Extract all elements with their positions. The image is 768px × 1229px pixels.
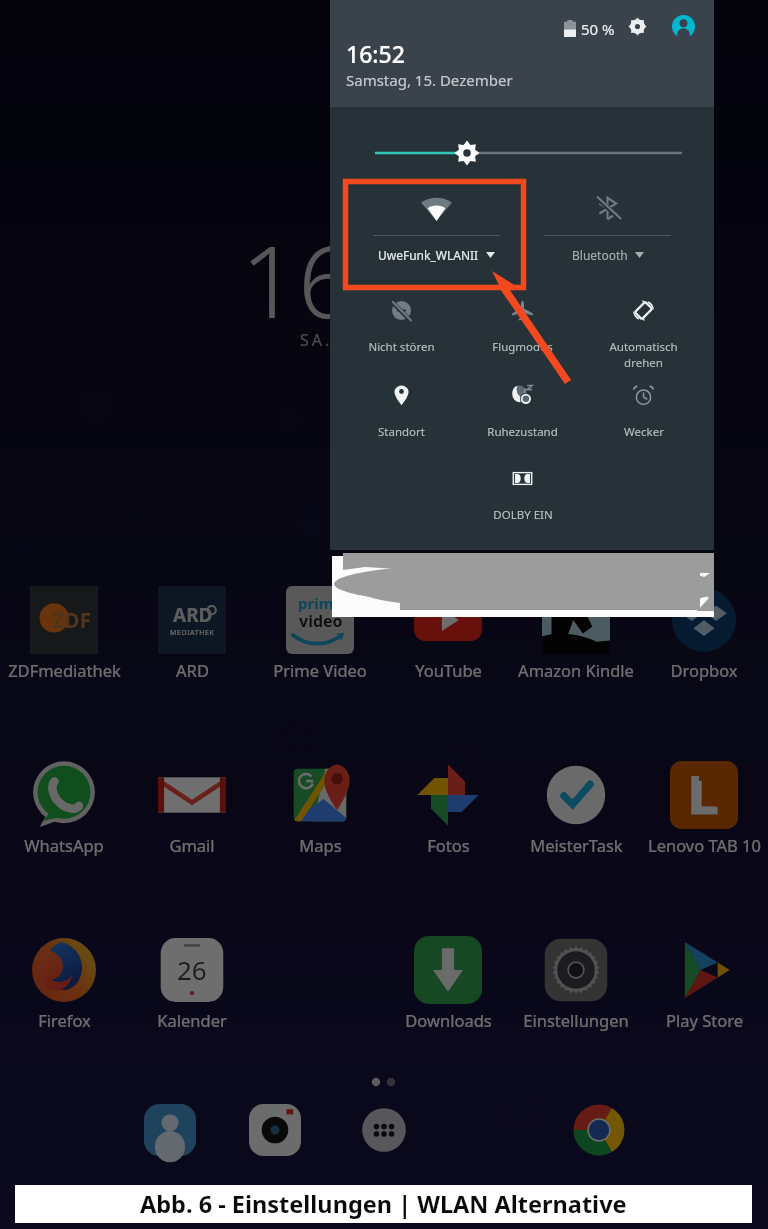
staticText: ZDF: [52, 606, 92, 635]
staticText: Fotos: [427, 834, 470, 856]
button[interactable]: User account: [672, 15, 695, 38]
button[interactable]: L: [642, 761, 766, 856]
button[interactable]: Gmail: [130, 761, 254, 856]
staticText: YouTube: [415, 659, 482, 681]
staticText: Firefox: [38, 1009, 91, 1031]
button[interactable]: Flugmodus: [462, 292, 583, 374]
staticText: Einstellungen: [523, 1009, 629, 1031]
button[interactable]: Ruhezustand: [462, 377, 583, 459]
staticText: MeisterTask: [530, 834, 623, 856]
staticText: UweFunk_WLANII: [378, 247, 479, 263]
staticText: prime: [298, 593, 343, 613]
staticText: WhatsApp: [24, 834, 104, 856]
staticText: Lenovo TAB 10: [648, 834, 761, 856]
staticText: Ruhezustand: [487, 424, 558, 440]
staticText: Prime Video: [273, 659, 367, 681]
staticText: DOLBY EIN: [493, 507, 553, 523]
button[interactable]: MeisterTask: [514, 761, 638, 856]
staticText: ZDFmediathek: [8, 659, 121, 681]
staticText: Wecker: [624, 424, 664, 440]
staticText: Standort: [378, 424, 425, 440]
staticText: Flugmodus: [492, 339, 553, 355]
button[interactable]: YouTube: [386, 586, 510, 681]
staticText: SA.: [300, 329, 333, 351]
button[interactable]: Dropbox: [642, 586, 766, 681]
button[interactable]: ARD: [130, 586, 254, 681]
staticText: ARD: [176, 659, 209, 681]
staticText: Downloads: [405, 1009, 492, 1031]
button[interactable]: ZDF: [2, 586, 126, 681]
button[interactable]: Firefox: [2, 936, 126, 1031]
button[interactable]: DOLBY EIN: [462, 460, 583, 542]
staticText: ARD: [173, 602, 213, 628]
staticText: 26: [177, 952, 207, 987]
button[interactable]: WhatsApp: [2, 761, 126, 856]
staticText: Automatisch drehen: [609, 339, 678, 370]
button[interactable]: Play Store: [642, 936, 766, 1031]
staticText: Maps: [299, 834, 342, 856]
button[interactable]: Downloads: [386, 936, 510, 1031]
staticText: Abb. 6 - Einstellungen | WLAN Alternativ…: [140, 1188, 627, 1220]
button[interactable]: Automatisch drehen: [583, 292, 704, 374]
button[interactable]: Contacts: [144, 1104, 196, 1156]
button[interactable]: Nicht stören: [340, 292, 462, 374]
staticText: Kalender: [157, 1009, 227, 1031]
staticText: 16:52: [346, 38, 405, 69]
staticText: L: [694, 767, 715, 821]
button[interactable]: Maps: [258, 761, 382, 856]
staticText: Gmail: [169, 834, 215, 856]
button[interactable]: Einstellungen: [514, 936, 638, 1031]
staticText: MEDIATHEK: [170, 628, 215, 638]
button[interactable]: Camera: [249, 1104, 301, 1156]
button[interactable]: UweFunk_WLANII: [351, 186, 522, 290]
button[interactable]: Wecker: [583, 377, 704, 459]
staticText: 50 %: [581, 19, 615, 39]
staticText: video: [299, 610, 343, 632]
button[interactable]: Bluetooth: [522, 186, 693, 290]
button[interactable]: All apps: [358, 1104, 410, 1156]
button[interactable]: prime: [258, 586, 382, 681]
staticText: Nicht stören: [368, 339, 435, 355]
staticText: Samstag, 15. Dezember: [346, 70, 513, 90]
button[interactable]: Fotos: [386, 761, 510, 856]
staticText: Dropbox: [670, 659, 738, 681]
button[interactable]: Amazon Kindle: [514, 586, 638, 681]
staticText: Bluetooth: [572, 247, 628, 263]
button[interactable]: 26: [130, 936, 254, 1031]
button[interactable]: Chrome: [573, 1104, 625, 1156]
staticText: Amazon Kindle: [518, 659, 634, 681]
staticText: Play Store: [666, 1009, 743, 1031]
button[interactable]: Settings: [628, 17, 647, 36]
button[interactable]: Standort: [340, 377, 462, 459]
staticText: 16: [241, 211, 356, 347]
